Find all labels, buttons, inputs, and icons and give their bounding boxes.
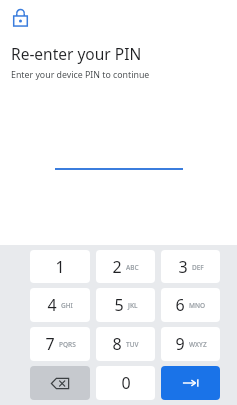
- staticText: ABC: [126, 263, 139, 272]
- staticText: DEF: [192, 263, 204, 272]
- staticText: GHI: [61, 301, 73, 310]
- staticText: TUV: [126, 340, 139, 349]
- button[interactable]: Enter: [161, 366, 220, 400]
- button[interactable]: 5: [96, 288, 155, 322]
- button[interactable]: 6: [161, 288, 220, 322]
- staticText: Enter your device PIN to continue: [11, 69, 150, 81]
- staticText: 7: [45, 333, 55, 355]
- staticText: WXYZ: [189, 340, 207, 349]
- staticText: 6: [175, 294, 185, 316]
- staticText: 5: [114, 294, 124, 316]
- button[interactable]: 4: [30, 288, 90, 322]
- staticText: 9: [175, 333, 185, 355]
- button[interactable]: 1: [30, 250, 90, 283]
- staticText: 0: [121, 372, 131, 394]
- staticText: 1: [55, 256, 65, 278]
- staticText: 8: [112, 333, 122, 355]
- staticText: 4: [47, 294, 57, 316]
- staticText: 3: [178, 256, 188, 278]
- button[interactable]: 7: [30, 327, 90, 361]
- button[interactable]: 0: [96, 366, 155, 400]
- button[interactable]: 2: [96, 250, 155, 283]
- button[interactable]: 9: [161, 327, 220, 361]
- staticText: PQRS: [59, 340, 76, 349]
- button[interactable]: 8: [96, 327, 155, 361]
- button[interactable]: 3: [161, 250, 220, 283]
- button[interactable]: Backspace: [30, 366, 90, 400]
- staticText: 2: [112, 256, 122, 278]
- staticText: MNO: [189, 301, 206, 310]
- staticText: Re-enter your PIN: [11, 43, 142, 64]
- staticText: JKL: [128, 301, 138, 310]
